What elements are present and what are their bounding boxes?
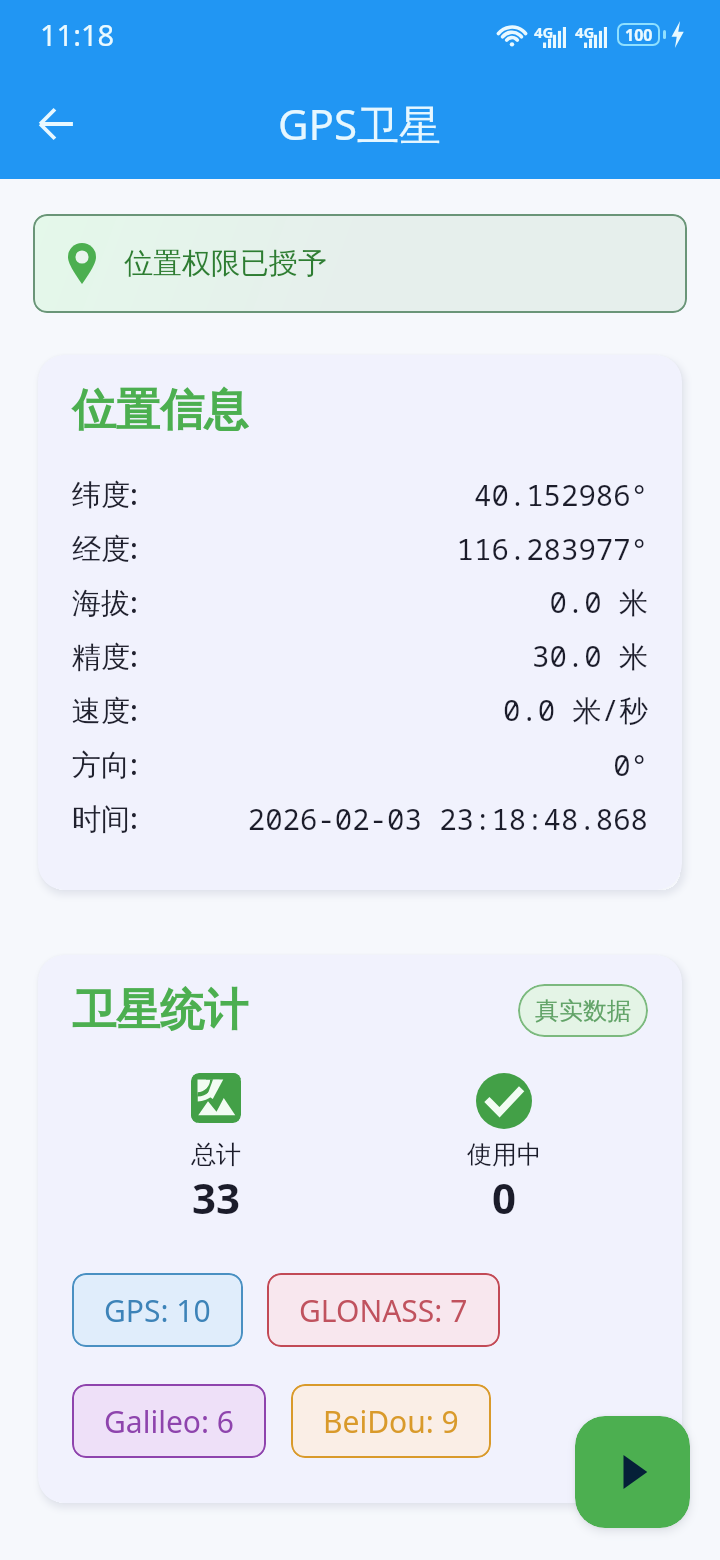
staticText: 海拔: (72, 582, 138, 622)
staticText: GLONASS: 7 (299, 1290, 468, 1331)
staticText: 总计 (191, 1139, 241, 1170)
staticText: 纬度: (72, 474, 138, 514)
staticText: GPS: 10 (104, 1290, 211, 1331)
staticText: BeiDou: 9 (323, 1401, 459, 1442)
staticText: 4G (575, 22, 595, 42)
staticText: 精度: (72, 636, 138, 676)
staticText: 卫星统计 (72, 983, 248, 1038)
button[interactable]: Start (575, 1416, 690, 1528)
staticText: 真实数据 (535, 996, 631, 1026)
staticText: 经度: (72, 528, 138, 568)
staticText: 0° (146, 745, 648, 784)
staticText: 使用中 (467, 1139, 542, 1170)
staticText: 116.283977° (146, 529, 648, 568)
staticText: Galileo: 6 (104, 1401, 234, 1442)
staticText: 11:18 (40, 15, 115, 54)
staticText: 0.0 米/秒 (146, 690, 648, 730)
staticText: 33 (192, 1169, 241, 1219)
staticText: 4G (534, 22, 554, 42)
staticText: 100 (625, 24, 653, 46)
button[interactable]: Back (20, 88, 92, 160)
button[interactable]: Galileo: 6 (72, 1384, 266, 1458)
staticText: 位置信息 (72, 383, 248, 438)
staticText: 30.0 米 (146, 636, 648, 676)
button[interactable]: GLONASS: 7 (267, 1273, 500, 1347)
staticText: 40.152986° (146, 475, 648, 514)
staticText: 位置权限已授予 (124, 245, 327, 282)
staticText: 0.0 米 (146, 582, 648, 622)
staticText: 2026-02-03 23:18:48.868 (146, 799, 648, 838)
staticText: 速度: (72, 690, 138, 730)
staticText: 时间: (72, 798, 138, 838)
staticText: 方向: (72, 744, 138, 784)
staticText: GPS卫星 (278, 95, 442, 152)
staticText: 0 (492, 1169, 517, 1219)
button[interactable]: 位置权限已授予 (33, 214, 687, 313)
button[interactable]: 真实数据 (518, 984, 648, 1037)
button[interactable]: BeiDou: 9 (291, 1384, 491, 1458)
button[interactable]: GPS: 10 (72, 1273, 243, 1347)
